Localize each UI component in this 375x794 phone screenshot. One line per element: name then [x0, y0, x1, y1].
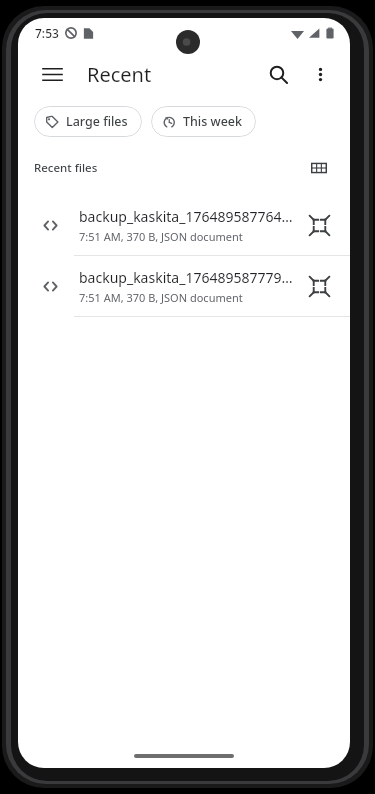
button[interactable]: Expand file [302, 269, 336, 303]
button[interactable]: More options [300, 54, 340, 94]
button[interactable]: Search [256, 52, 300, 96]
button[interactable]: Expand file [302, 208, 336, 242]
staticText: Recent [87, 61, 152, 88]
staticText: Recent files [34, 160, 98, 176]
button[interactable]: This week [151, 106, 256, 137]
button[interactable]: Large files [34, 106, 142, 137]
button[interactable]: backup_kaskita_1764895877649.... [18, 195, 350, 256]
staticText: 7:51 AM, 370 B, JSON document [79, 290, 243, 305]
staticText: backup_kaskita_1764895877649.... [79, 207, 294, 226]
staticText: 7:53 [35, 25, 59, 41]
staticText: backup_kaskita_1764895877799.... [79, 268, 294, 287]
button[interactable]: Switch to grid view [302, 151, 336, 185]
staticText: Large files [66, 113, 128, 130]
button[interactable]: Open navigation drawer [30, 52, 74, 96]
button[interactable]: backup_kaskita_1764895877799.... [18, 256, 350, 317]
staticText: This week [183, 113, 242, 130]
staticText: 7:51 AM, 370 B, JSON document [79, 229, 243, 244]
